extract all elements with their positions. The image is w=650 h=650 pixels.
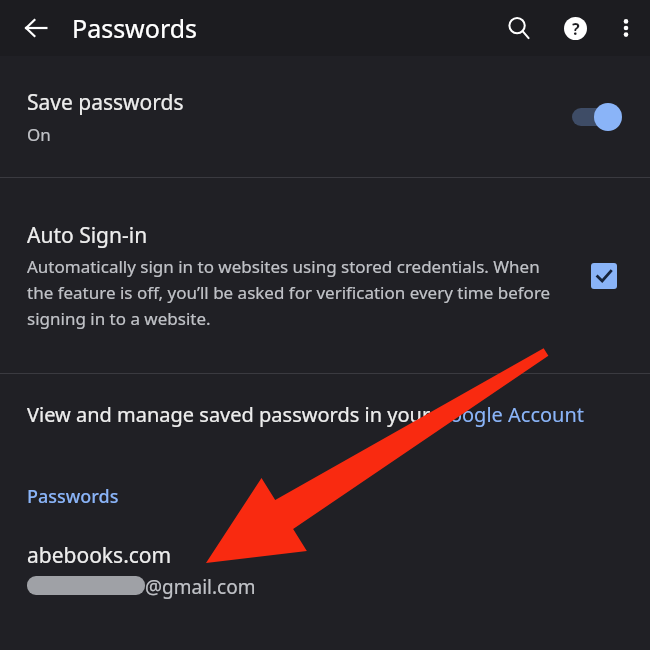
button[interactable]: Save passwords (0, 56, 650, 177)
staticText: Passwords (72, 11, 198, 45)
staticText: Automatically sign in to websites using … (27, 255, 570, 330)
staticText: Save passwords (27, 88, 184, 117)
staticText: ? (572, 18, 580, 40)
staticText: On (27, 123, 51, 146)
button[interactable]: Search (490, 0, 548, 56)
button[interactable]: Auto Sign-in (0, 178, 650, 373)
staticText: abebooks.com (27, 541, 172, 570)
button[interactable]: More options (602, 0, 650, 56)
staticText: @gmail.com (145, 574, 256, 600)
button[interactable]: abebooks.com (0, 541, 650, 600)
button[interactable]: Help (548, 0, 602, 56)
button[interactable]: Save passwords toggle (568, 97, 626, 137)
staticText: Passwords (27, 484, 119, 509)
button[interactable]: View and manage saved passwords in your … (0, 374, 650, 484)
staticText: View and manage saved passwords in your … (27, 401, 585, 428)
button[interactable]: Auto Sign-in checkbox (584, 256, 624, 296)
button[interactable]: Back (0, 0, 72, 56)
staticText: Auto Sign-in (27, 221, 148, 250)
